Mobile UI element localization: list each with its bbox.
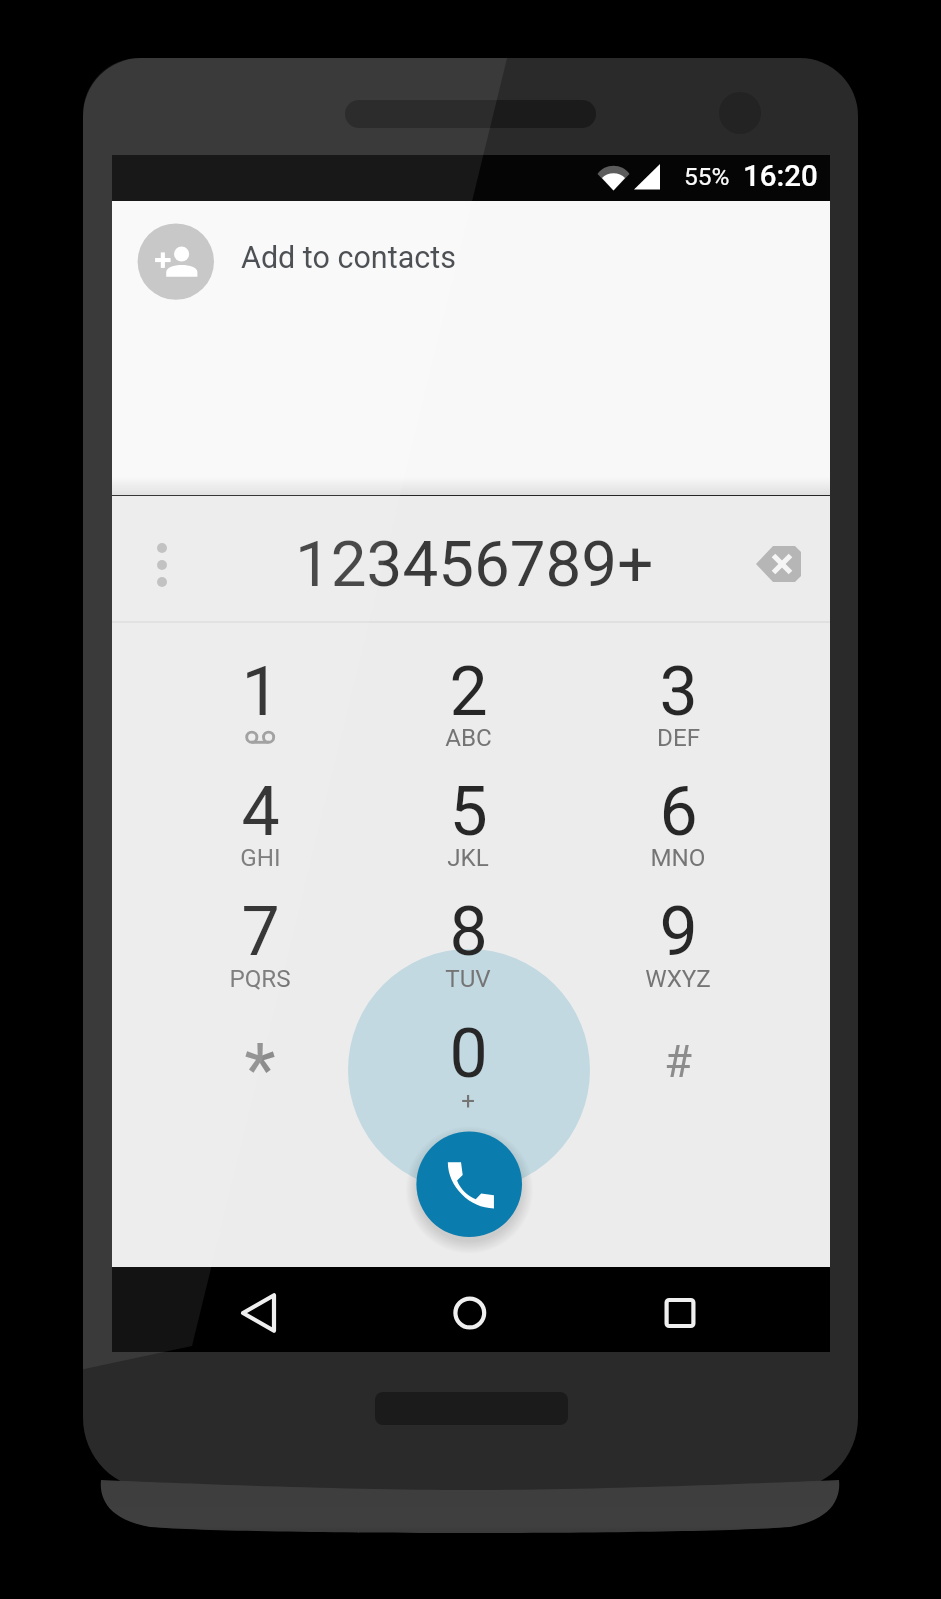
staticText: 0 [449,1014,488,1094]
staticText: 6 [659,772,698,852]
button[interactable]: Dial 7 [156,895,364,1014]
staticText: DEF [657,724,700,752]
staticText: TUV [445,965,491,993]
button[interactable]: Dial pound [574,1017,782,1136]
staticText: 2 [449,652,488,732]
button[interactable]: Dial 4 [156,774,364,893]
staticText: 7 [241,892,280,972]
button[interactable]: Recent apps [591,1267,830,1352]
button[interactable]: Add to contacts [112,207,830,309]
staticText: Add to contacts [241,240,456,276]
button[interactable]: Dial 5 [364,774,572,893]
staticText: 1 [241,652,280,732]
button[interactable]: Dial 3 [574,654,782,773]
staticText: WXYZ [645,965,711,993]
staticText: 9 [659,892,698,972]
staticText: * [244,1028,276,1112]
button[interactable]: Dial 1 [156,654,364,773]
button[interactable]: Dial 2 [364,654,572,773]
staticText: 4 [241,772,280,852]
staticText: 16:20 [743,159,818,194]
button[interactable]: Dial star [156,1017,364,1136]
button[interactable]: Dial 9 [574,895,782,1014]
staticText: 123456789+ [295,527,654,602]
staticText: JKL [447,844,489,872]
button[interactable]: Call [416,1132,522,1238]
staticText: 55% [684,162,730,191]
button[interactable]: Backspace [731,516,827,612]
button[interactable]: Dial 0 [364,1017,572,1136]
staticText: 8 [449,892,488,972]
button[interactable]: More options [130,516,194,612]
staticText: # [664,1035,692,1088]
button[interactable]: Dial 6 [574,774,782,893]
button[interactable]: Back [112,1267,351,1352]
staticText: PQRS [229,965,291,993]
button[interactable]: Dial 8 [364,895,572,1014]
staticText: 5 [449,772,488,852]
staticText: ABC [445,724,492,752]
staticText: MNO [650,844,706,872]
staticText: GHI [240,844,281,872]
staticText: + [461,1087,475,1115]
button[interactable]: Home [351,1267,590,1352]
staticText: 3 [659,652,698,732]
